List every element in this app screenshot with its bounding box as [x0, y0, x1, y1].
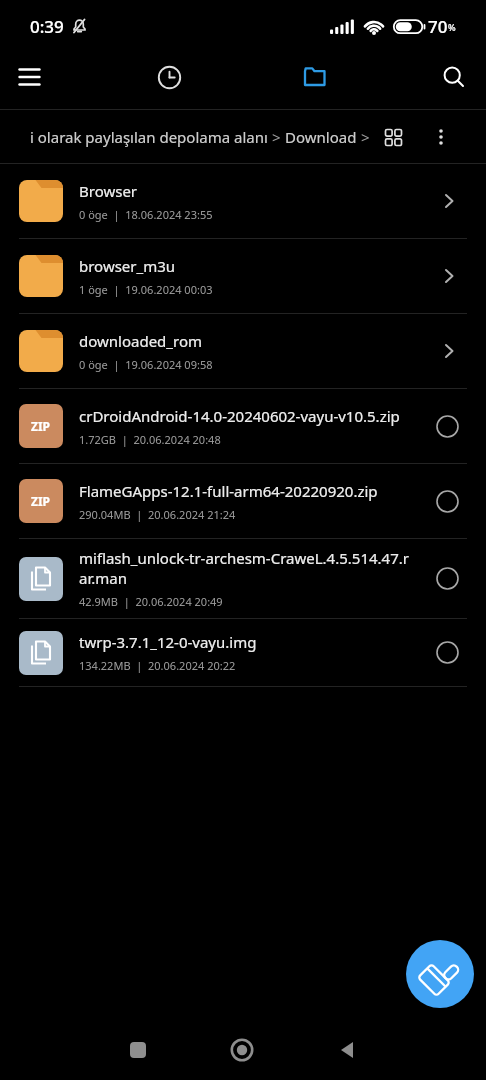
button[interactable]: browser_m3u — [0, 239, 486, 313]
button[interactable]: i olarak paylaşılan depolama alanı — [30, 127, 268, 147]
button[interactable]: ZIP — [0, 389, 486, 463]
button[interactable] — [438, 61, 470, 93]
staticText: downloaded_rom — [79, 331, 202, 351]
button[interactable]: miflash_unlock-tr-archesm-CraweL.4.5.514… — [0, 539, 486, 618]
staticText: miflash_unlock-tr-archesm-CraweL.4.5.514… — [79, 548, 409, 588]
button[interactable]: downloaded_rom — [0, 314, 486, 388]
button[interactable] — [380, 124, 406, 150]
staticText: % — [448, 21, 456, 33]
staticText: 0:39 — [30, 15, 64, 38]
staticText: > — [268, 127, 285, 147]
staticText: ZIP — [31, 493, 51, 509]
button[interactable] — [14, 61, 46, 93]
button[interactable] — [299, 61, 331, 93]
staticText: twrp-3.7.1_12-0-vayu.img — [79, 632, 257, 652]
button[interactable] — [428, 124, 454, 150]
staticText: > — [357, 127, 374, 147]
staticText: 42.9MB | 20.06.2024 20:49 — [79, 594, 223, 609]
staticText: FlameGApps-12.1-full-arm64-20220920.zip — [79, 481, 378, 501]
staticText: browser_m3u — [79, 256, 176, 276]
staticText: 0 öge | 18.06.2024 23:55 — [79, 207, 213, 222]
button[interactable] — [153, 61, 185, 93]
button[interactable]: ZIP — [0, 464, 486, 538]
button[interactable] — [406, 940, 474, 1008]
staticText: 0 öge | 19.06.2024 09:58 — [79, 357, 213, 372]
staticText: crDroidAndroid-14.0-20240602-vayu-v10.5.… — [79, 406, 400, 426]
button[interactable]: twrp-3.7.1_12-0-vayu.img — [0, 619, 486, 686]
button[interactable] — [338, 1040, 358, 1060]
staticText: 70 — [428, 15, 448, 38]
button[interactable]: Download — [285, 127, 357, 147]
staticText: 290.04MB | 20.06.2024 21:24 — [79, 507, 236, 522]
staticText: Browser — [79, 181, 138, 201]
staticText: 1 öge | 19.06.2024 00:03 — [79, 282, 213, 297]
button[interactable] — [129, 1041, 147, 1059]
button[interactable] — [230, 1038, 254, 1062]
staticText: ZIP — [31, 418, 51, 434]
staticText: 1.72GB | 20.06.2024 20:48 — [79, 432, 221, 447]
button[interactable]: Browser — [0, 164, 486, 238]
staticText: 134.22MB | 20.06.2024 20:22 — [79, 658, 236, 673]
